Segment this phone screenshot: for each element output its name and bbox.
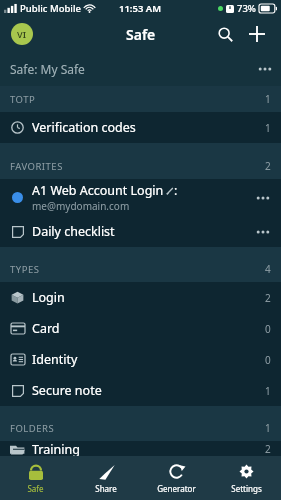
staticText: Identity <box>32 351 78 368</box>
button[interactable]: A1 Web Account Login <box>0 179 281 216</box>
staticText: 1 <box>265 421 271 435</box>
staticText: 2 <box>265 442 271 456</box>
staticText: Safe <box>126 25 156 44</box>
staticText: FOLDERS <box>10 422 55 435</box>
staticText: Login <box>32 289 65 306</box>
staticText: 73% <box>237 2 256 15</box>
staticText: 0 <box>265 322 271 336</box>
staticText: 2 <box>265 159 271 173</box>
staticText: TOTP <box>10 93 36 106</box>
button[interactable]: Account <box>11 23 33 45</box>
button[interactable]: Identity <box>0 344 281 375</box>
button[interactable]: Share <box>71 456 141 500</box>
staticText: 11:53 AM <box>119 2 162 15</box>
button[interactable]: Settings <box>211 456 281 500</box>
staticText: Public Mobile <box>20 2 81 15</box>
button[interactable]: Search <box>209 18 241 50</box>
staticText: VI <box>17 28 27 40</box>
staticText: FAVORITES <box>10 160 63 173</box>
button[interactable]: Secure note <box>0 375 281 406</box>
staticText: 4 <box>265 262 271 276</box>
staticText: Daily checklist <box>32 223 255 240</box>
button[interactable]: Generator <box>141 456 211 500</box>
staticText: Generator <box>157 483 196 494</box>
staticText: Share <box>95 483 117 494</box>
staticText: 1 <box>265 92 271 106</box>
button[interactable]: Safe <box>0 456 71 500</box>
staticText: 1 <box>265 121 271 135</box>
staticText: : <box>174 182 178 199</box>
staticText: 2 <box>265 291 271 305</box>
staticText: me@mydomain.com <box>32 199 130 213</box>
button[interactable]: Verification codes <box>0 112 281 143</box>
staticText: Card <box>32 320 60 337</box>
button[interactable]: Daily checklist <box>0 216 281 247</box>
staticText: Settings <box>231 483 262 494</box>
staticText: Safe <box>27 483 44 494</box>
button[interactable]: Card <box>0 313 281 344</box>
staticText: 0 <box>265 353 271 367</box>
staticText: Secure note <box>32 382 102 399</box>
staticText: 1 <box>265 384 271 398</box>
staticText: Training <box>32 441 80 456</box>
staticText: TYPES <box>10 263 40 276</box>
button[interactable]: Login <box>0 282 281 313</box>
button[interactable]: Training <box>0 441 281 456</box>
button[interactable]: Add <box>241 18 273 50</box>
staticText: A1 Web Account Login <box>32 182 164 199</box>
staticText: Verification codes <box>32 119 136 136</box>
staticText: Safe: My Safe <box>10 61 85 77</box>
button[interactable]: Safe: My Safe <box>0 52 281 86</box>
